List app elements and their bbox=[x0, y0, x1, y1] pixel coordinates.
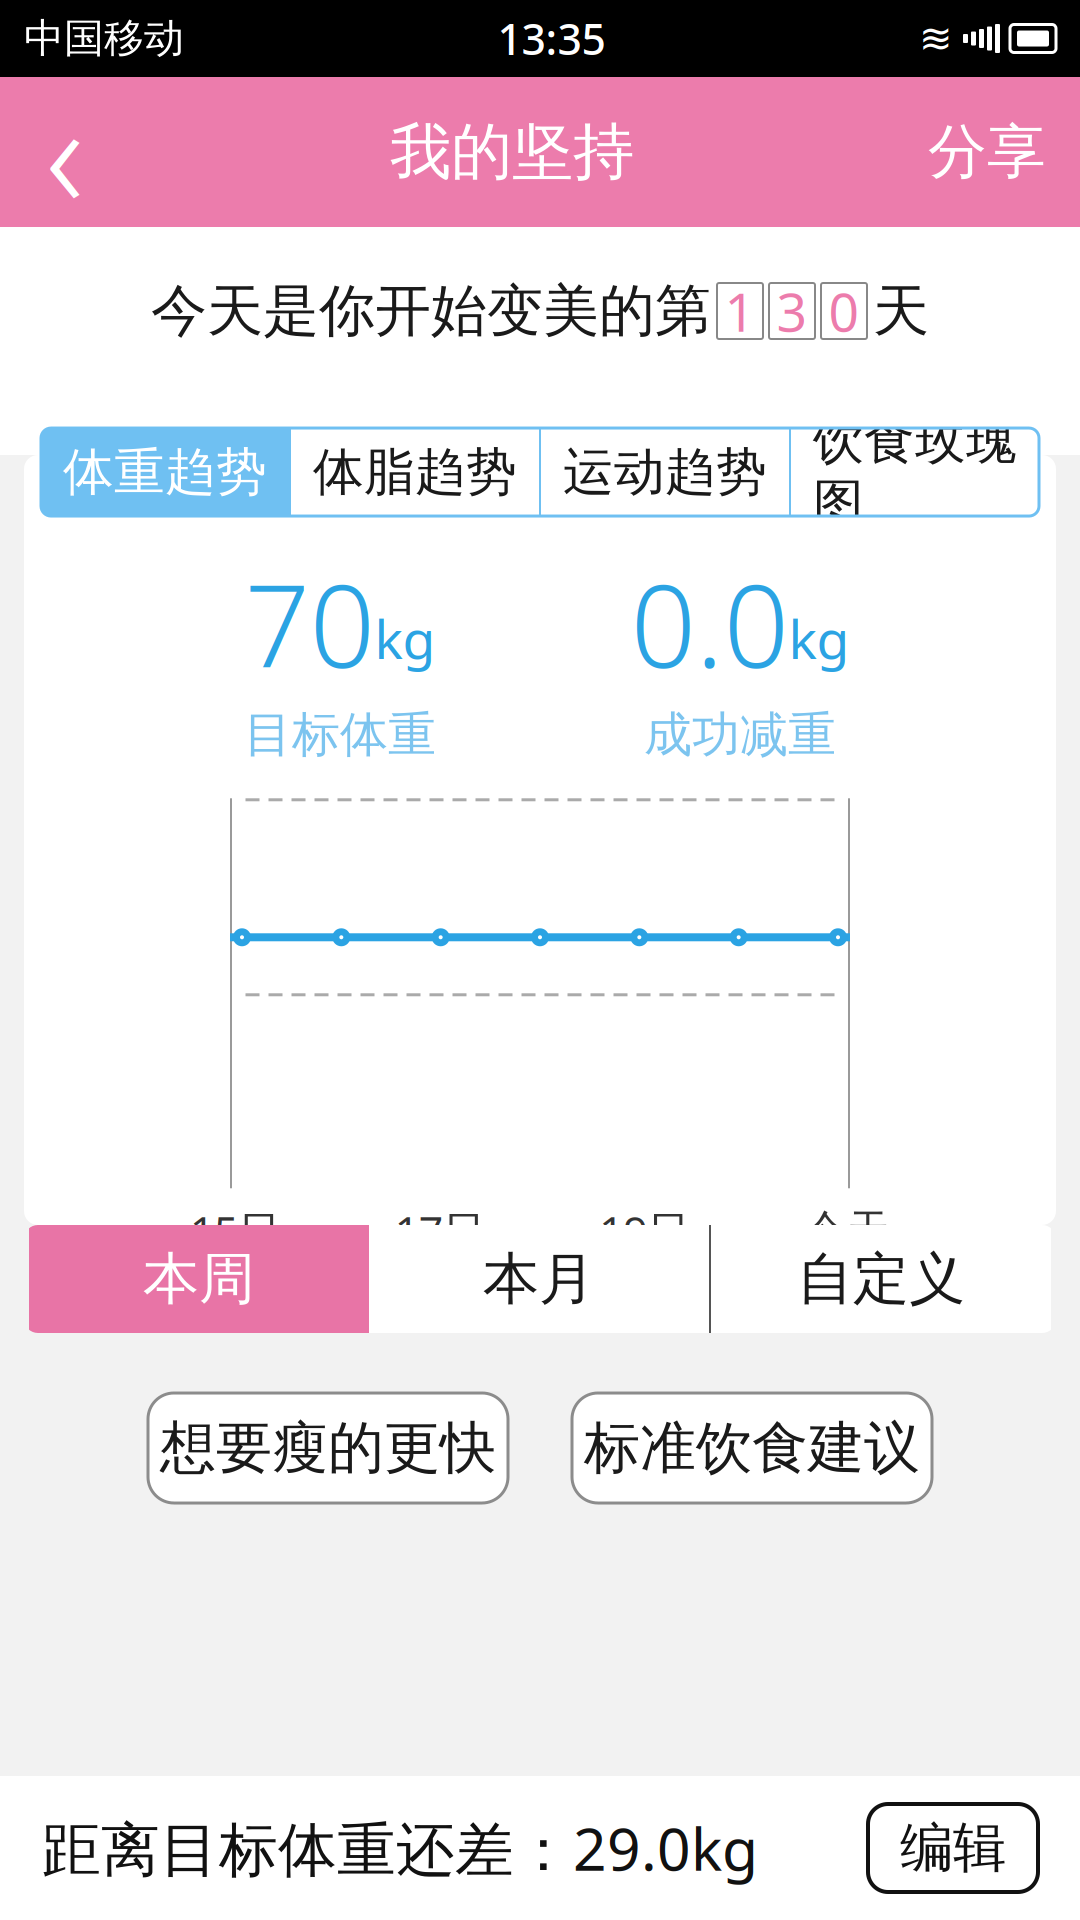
staticText: 体重趋势 bbox=[63, 441, 267, 503]
staticText: 3 bbox=[776, 276, 807, 346]
staticText: 70 bbox=[244, 547, 374, 699]
staticText: 19日 bbox=[599, 1202, 690, 1259]
staticText: 0 bbox=[828, 276, 859, 346]
staticText: 中国移动 bbox=[24, 14, 184, 63]
button[interactable]: 饮食玫瑰图 bbox=[791, 428, 1039, 516]
staticText: 标准饮食建议 bbox=[584, 1414, 920, 1482]
staticText: kg bbox=[374, 603, 435, 674]
staticText: 1 bbox=[724, 276, 755, 346]
staticText: 0.0 bbox=[630, 547, 788, 699]
staticText: 目标体重 bbox=[244, 705, 436, 764]
staticText: 今天 bbox=[804, 1204, 890, 1257]
button[interactable]: 想要瘦的更快 bbox=[148, 1393, 508, 1503]
button[interactable]: 标准饮食建议 bbox=[572, 1393, 932, 1503]
staticText: kg bbox=[788, 603, 849, 674]
staticText: 自定义 bbox=[797, 1245, 965, 1313]
staticText: 17日 bbox=[395, 1202, 486, 1259]
staticText: 天 bbox=[873, 277, 929, 345]
staticText: 成功减重 bbox=[644, 705, 836, 764]
staticText: 运动趋势 bbox=[563, 441, 767, 503]
button[interactable]: 本月 bbox=[369, 1225, 709, 1333]
button[interactable]: 体重趋势 bbox=[41, 428, 289, 516]
staticText: 今天是你开始变美的第 bbox=[151, 277, 711, 345]
staticText: 体脂趋势 bbox=[313, 441, 517, 503]
staticText: ‹ bbox=[45, 55, 84, 249]
staticText: 编辑 bbox=[900, 1815, 1006, 1881]
staticText: 饮食玫瑰图 bbox=[813, 410, 1017, 534]
button[interactable]: 本周 bbox=[29, 1225, 369, 1333]
staticText: 本月 bbox=[483, 1245, 595, 1313]
button[interactable]: 自定义 bbox=[711, 1225, 1051, 1333]
staticText: ≋ bbox=[919, 16, 953, 61]
staticText: 距离目标体重还差：29.0kg bbox=[42, 1809, 758, 1887]
staticText: 我的坚持 bbox=[390, 114, 634, 190]
button[interactable]: 分享 bbox=[894, 77, 1080, 227]
staticText: 13:35 bbox=[497, 10, 605, 67]
staticText: 想要瘦的更快 bbox=[160, 1414, 496, 1482]
staticText: 本周 bbox=[143, 1245, 255, 1313]
button[interactable]: 编辑 bbox=[868, 1804, 1038, 1892]
button[interactable]: 运动趋势 bbox=[541, 428, 789, 516]
staticText: 15日 bbox=[190, 1202, 281, 1259]
button[interactable]: 返回 bbox=[0, 77, 130, 227]
staticText: 分享 bbox=[928, 116, 1046, 188]
button[interactable]: 体脂趋势 bbox=[291, 428, 539, 516]
